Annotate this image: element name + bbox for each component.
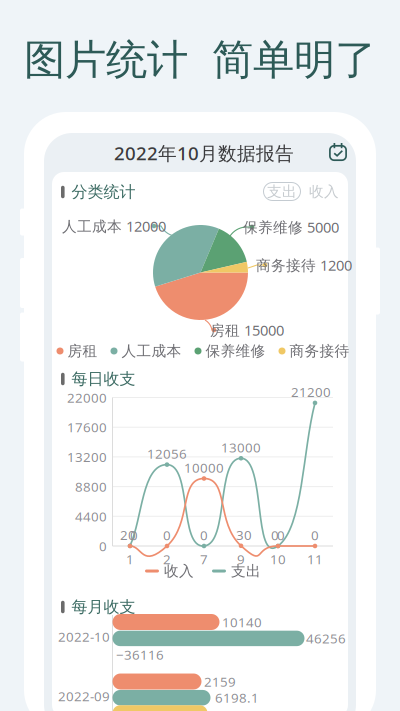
staticText: 6198.1 [215,689,259,706]
staticText: 0 [311,526,319,544]
button[interactable]: 收入 [305,182,342,200]
staticText: 0 [271,526,279,544]
staticText: 人工成本 [121,342,181,360]
staticText: 13000 [221,438,261,456]
staticText: 46256 [306,629,346,647]
staticText: 4400 [75,507,107,525]
button[interactable]: 支出 [263,182,300,200]
staticText: 2022-10 [58,628,110,645]
staticText: 11 [307,550,323,568]
staticText: 房租 [67,342,97,360]
staticText: 13200 [67,448,107,466]
staticText: 商务接待 [289,342,349,360]
staticText: 0 [163,526,171,544]
staticText: 商务接待 1200 [256,255,352,275]
staticText: 7 [200,550,208,568]
staticText: 12056 [147,445,187,462]
staticText: 保养维修 5000 [243,217,339,237]
staticText: 房租 15000 [210,320,284,340]
staticText: 9 [237,550,245,568]
staticText: 收入 [309,182,339,200]
staticText: 30 [236,526,252,544]
staticText: 10140 [222,613,262,631]
staticText: 分类统计 [72,182,136,202]
staticText: −36116 [116,646,164,663]
staticText: 20 [120,526,136,544]
button[interactable]: 2022年10月数据报告 [108,137,300,169]
staticText: 每日收支 [72,369,136,389]
staticText: 22000 [67,389,107,406]
staticText: 0 [99,537,107,555]
staticText: 2022-09 [58,687,110,705]
staticText: 图片统计 简单明了 [24,35,376,85]
staticText: 人工成本 12000 [62,216,166,236]
staticText: 17600 [67,418,107,436]
staticText: 0 [277,526,285,544]
staticText: 10000 [184,459,224,476]
staticText: 0 [200,526,208,544]
staticText: 2 [163,550,171,568]
staticText: 8800 [75,478,107,495]
staticText: 0 [130,526,138,544]
staticText: 21200 [291,383,331,401]
staticText: 每月收支 [72,597,136,617]
staticText: 1 [126,550,134,568]
staticText: 支出 [267,182,297,200]
staticText: 10 [270,550,286,568]
staticText: 收入 [164,562,194,580]
staticText: 2159 [204,673,236,690]
staticText: 保养维修 [205,342,265,360]
staticText: 2022年10月数据报告 [114,141,294,165]
staticText: 支出 [231,562,261,580]
button[interactable]: 选择日期 [325,139,351,165]
